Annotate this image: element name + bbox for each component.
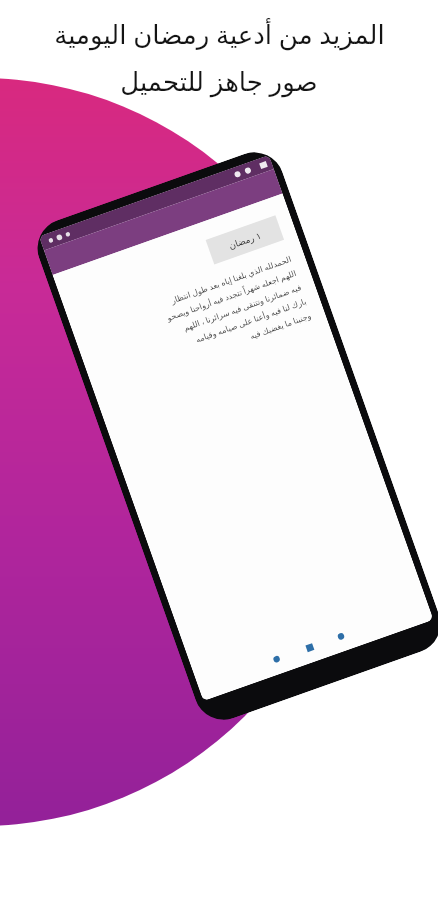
staticText: الحمدلله الذي بلغنا إياه بعد طول انتظار …	[85, 253, 312, 392]
staticText: صور جاهز للتحميل	[120, 63, 318, 98]
button[interactable]: ١ رمضان	[206, 215, 284, 264]
button[interactable]: App toolbar	[44, 169, 283, 275]
button[interactable]: App screenshot preview	[29, 144, 438, 728]
staticText: المزيد من أدعية رمضان اليومية	[54, 16, 385, 51]
staticText: ١ رمضان	[227, 228, 263, 251]
